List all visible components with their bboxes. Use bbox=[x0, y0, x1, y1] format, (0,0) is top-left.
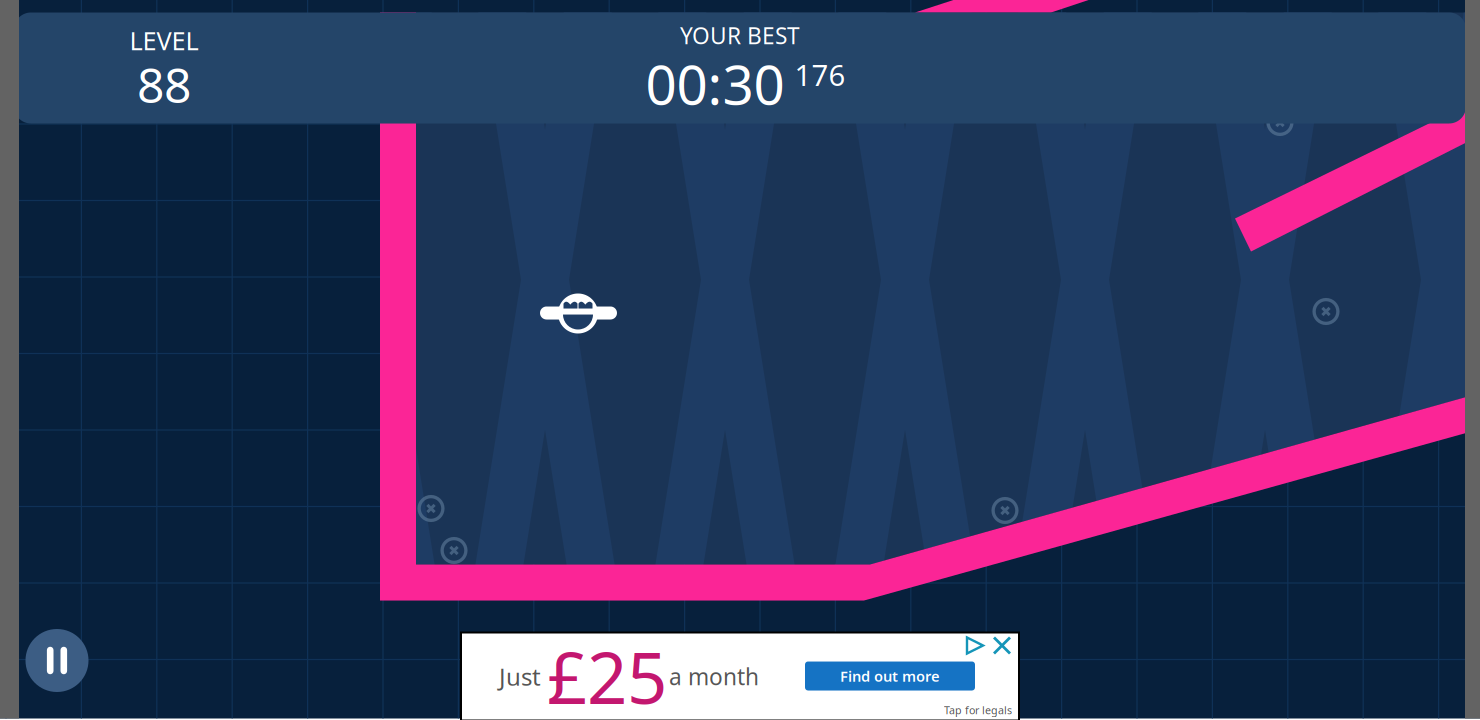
staticText: a month bbox=[669, 661, 759, 691]
staticText: £25 bbox=[547, 630, 667, 720]
button[interactable]: Pause bbox=[25, 629, 88, 692]
staticText: Tap for legals bbox=[944, 703, 1012, 717]
staticText: 88 bbox=[137, 53, 191, 116]
staticText: YOUR BEST bbox=[680, 20, 800, 50]
staticText: 00:30 bbox=[645, 47, 784, 120]
button[interactable]: Advertisement bbox=[460, 631, 1020, 720]
staticText: LEVEL bbox=[129, 24, 198, 57]
staticText: Just bbox=[499, 661, 541, 692]
staticText: 176 bbox=[794, 55, 845, 94]
staticText: Find out more bbox=[840, 666, 940, 686]
